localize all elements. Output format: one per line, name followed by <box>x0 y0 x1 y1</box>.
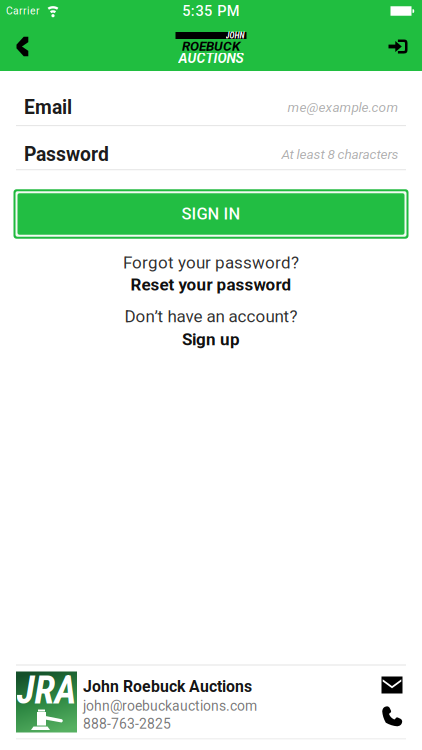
staticText: 888-763-2825 <box>83 716 171 732</box>
staticText: Don’t have an account? <box>124 307 297 326</box>
staticText: Forgot your password? <box>123 253 299 273</box>
button[interactable]: Password <box>0 126 422 169</box>
button[interactable]: Sign in <box>374 22 422 71</box>
button[interactable]: Forgot your password? <box>123 253 299 294</box>
button[interactable]: Email <box>0 71 422 125</box>
button[interactable]: Don’t have an account? <box>124 307 297 349</box>
staticText: me@example.com <box>287 99 398 115</box>
staticText: AUCTIONS <box>178 50 243 66</box>
button[interactable]: Call <box>381 705 403 727</box>
staticText: At least 8 characters <box>281 146 398 162</box>
staticText: SIGN IN <box>181 204 240 224</box>
staticText: JOHN <box>225 30 244 40</box>
staticText: Email <box>24 96 72 119</box>
staticText: 5:35 PM <box>182 2 240 19</box>
staticText: Carrier <box>6 5 40 17</box>
staticText: John Roebuck Auctions <box>83 677 252 696</box>
staticText: john@roebuckauctions.com <box>83 698 257 714</box>
staticText: ROEBUCK <box>182 38 240 54</box>
button[interactable]: Email <box>381 676 402 693</box>
button[interactable]: SIGN IN <box>0 189 422 239</box>
staticText: JRA <box>16 668 76 713</box>
staticText: Sign up <box>182 329 240 349</box>
staticText: Reset your password <box>130 275 291 295</box>
button[interactable]: Back <box>0 22 46 71</box>
staticText: Password <box>24 143 109 166</box>
